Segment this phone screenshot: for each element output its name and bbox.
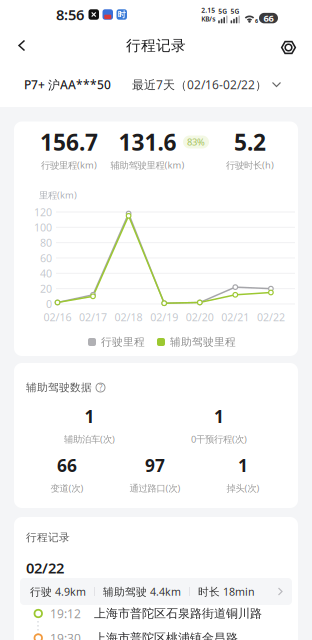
staticText: 02/19 bbox=[150, 310, 178, 324]
staticText: 02/22 bbox=[26, 558, 64, 577]
staticText: 行程记录 bbox=[26, 531, 70, 544]
staticText: 02/17 bbox=[79, 310, 107, 324]
staticText: 156.7 bbox=[40, 127, 98, 157]
button[interactable]: 行驶 4.9km bbox=[20, 578, 292, 605]
staticText: 40 bbox=[40, 266, 52, 280]
staticText: 行驶里程(km) bbox=[41, 159, 97, 171]
staticText: 0干预行程(次) bbox=[191, 433, 247, 445]
staticText: 1 bbox=[214, 405, 224, 428]
staticText: 6 bbox=[255, 17, 258, 24]
staticText: 5.2 bbox=[234, 127, 266, 157]
staticText: 1 bbox=[84, 405, 94, 428]
staticText: 1 bbox=[238, 454, 248, 477]
staticText: 行驶时长(h) bbox=[226, 159, 274, 171]
staticText: 5G bbox=[218, 7, 227, 16]
staticText: 上海市普陀区桃浦镇金昌路 bbox=[94, 631, 238, 640]
button[interactable]: Back bbox=[0, 31, 27, 59]
button[interactable]: 19:30 bbox=[34, 627, 306, 640]
staticText: 最近7天（02/16-02/22） bbox=[132, 76, 267, 92]
staticText: 8:56 bbox=[56, 5, 84, 24]
staticText: 上海市普陀区石泉路街道铜川路 bbox=[94, 606, 262, 621]
staticText: 66 bbox=[57, 454, 77, 477]
staticText: 时 bbox=[118, 10, 126, 19]
staticText: 80 bbox=[40, 236, 52, 250]
staticText: 02/20 bbox=[186, 310, 214, 324]
staticText: 131.6 bbox=[118, 127, 176, 157]
button[interactable]: 最近7天（02/16-02/22） bbox=[132, 76, 281, 92]
staticText: 02/18 bbox=[115, 310, 143, 324]
staticText: 辅助驾驶里程 bbox=[170, 335, 236, 348]
staticText: 里程(km) bbox=[39, 189, 77, 201]
staticText: 通过路口(次) bbox=[129, 482, 180, 494]
staticText: 66 bbox=[263, 12, 273, 24]
staticText: 19:30 bbox=[50, 630, 81, 640]
staticText: 60 bbox=[40, 251, 52, 265]
staticText: 02/16 bbox=[43, 310, 71, 324]
staticText: 掉头(次) bbox=[226, 482, 259, 494]
staticText: 2.15 bbox=[201, 6, 215, 14]
button[interactable]: 19:12 bbox=[34, 602, 306, 624]
staticText: 行程记录 bbox=[126, 36, 186, 54]
staticText: 5G bbox=[231, 7, 240, 16]
staticText: 02/22 bbox=[257, 310, 285, 324]
staticText: 辅助驾驶 4.4km bbox=[103, 584, 181, 599]
staticText: P7+ 沪AA***50 bbox=[24, 76, 111, 92]
staticText: 行驶 4.9km bbox=[30, 584, 86, 599]
button[interactable]: Settings bbox=[281, 30, 312, 61]
staticText: 97 bbox=[145, 454, 165, 477]
staticText: ? bbox=[99, 382, 102, 393]
staticText: 83% bbox=[187, 136, 205, 148]
staticText: 120 bbox=[34, 205, 52, 219]
staticText: 19:12 bbox=[50, 605, 81, 621]
staticText: 变道(次) bbox=[50, 482, 83, 494]
staticText: KB/s bbox=[201, 14, 215, 23]
staticText: 02/21 bbox=[221, 310, 249, 324]
staticText: 辅助驾驶数据 bbox=[26, 381, 92, 394]
staticText: 100 bbox=[34, 220, 52, 234]
staticText: 时长 18min bbox=[198, 584, 255, 599]
staticText: 辅助驾驶里程(km) bbox=[110, 159, 184, 171]
staticText: 0 bbox=[46, 297, 52, 311]
staticText: 20 bbox=[40, 282, 52, 296]
staticText: 行驶里程 bbox=[101, 335, 145, 348]
staticText: 辅助泊车(次) bbox=[64, 433, 115, 445]
